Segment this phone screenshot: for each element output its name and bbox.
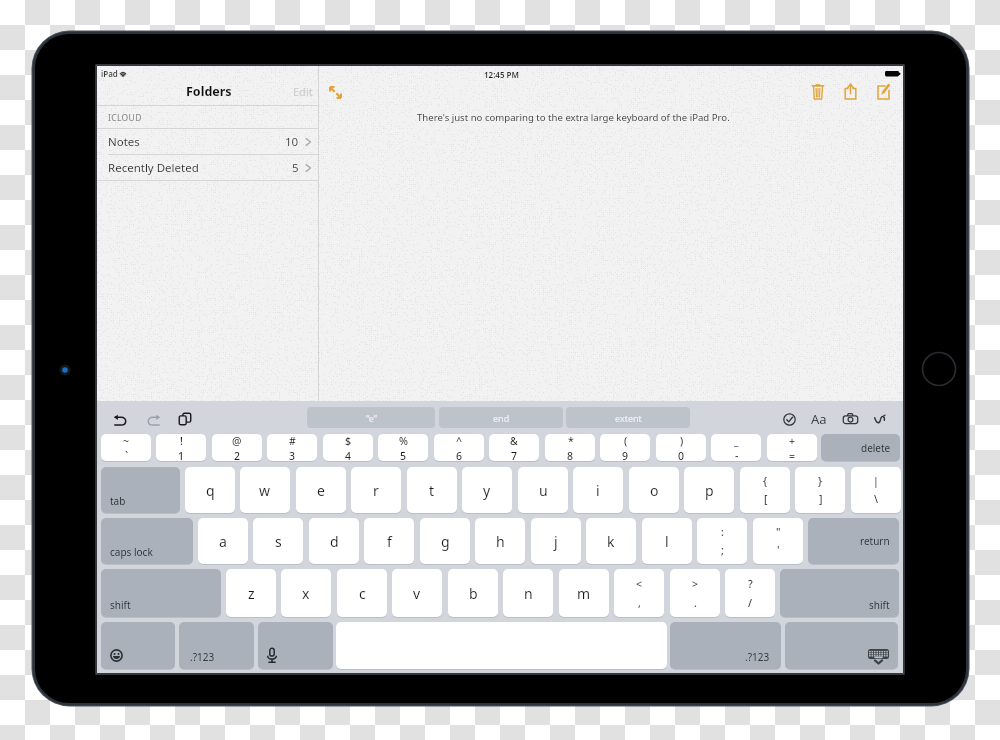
button[interactable]: Paste [179,413,191,425]
button[interactable]: Notes [97,128,318,155]
button[interactable]: y [462,467,512,513]
button[interactable]: x [281,569,331,617]
staticText: $ [345,434,352,448]
button[interactable]: z [226,569,276,617]
button[interactable]: ( [600,434,650,461]
staticText: p [705,481,714,500]
staticText: 5 [292,160,299,176]
button[interactable]: % [378,434,428,461]
button[interactable]: : [697,518,747,564]
button[interactable]: Share [844,83,857,100]
staticText: % [399,434,408,448]
button[interactable]: n [503,569,553,617]
button[interactable]: & [489,434,539,461]
button[interactable]: u [518,467,568,513]
staticText: s [275,532,282,551]
button[interactable]: " [753,518,803,564]
button[interactable]: + [767,434,817,461]
staticText: _ [734,434,739,448]
button[interactable]: * [545,434,595,461]
button[interactable]: Emoji [101,622,175,669]
button[interactable]: $ [323,434,373,461]
button[interactable]: p [684,467,734,513]
button[interactable]: Hide keyboard [785,622,898,669]
staticText: shift [869,598,890,612]
button[interactable]: > [670,569,720,617]
button[interactable]: Undo [114,414,127,426]
staticText: * [568,434,574,448]
button[interactable]: t [407,467,457,513]
button[interactable]: Expand note [329,86,342,99]
staticText: 4 [345,449,352,461]
button[interactable]: Edit [287,81,318,102]
button[interactable]: j [531,518,581,564]
staticText: 6 [456,449,463,461]
button[interactable]: Delete [812,83,824,100]
button[interactable]: c [337,569,387,617]
button[interactable]: Redo [147,414,160,426]
staticText: Notes [108,134,140,150]
button[interactable]: New note [877,83,890,100]
button[interactable]: f [364,518,414,564]
staticText: # [289,434,296,448]
button[interactable]: < [614,569,664,617]
staticText: a [219,532,227,551]
button[interactable]: shift [101,569,221,617]
button[interactable]: ! [156,434,206,461]
button[interactable]: @ [212,434,262,461]
button[interactable]: e [296,467,346,513]
button[interactable]: Text format [808,410,830,428]
button[interactable]: “e” [307,407,435,428]
button[interactable]: b [448,569,498,617]
button[interactable]: ^ [434,434,484,461]
button[interactable]: ? [725,569,775,617]
staticText: u [539,481,548,500]
button[interactable]: | [851,467,901,513]
button[interactable]: delete [821,434,900,461]
button[interactable]: _ [711,434,761,461]
staticText: “e” [366,412,377,424]
staticText: extent [615,412,642,424]
button[interactable]: } [795,467,845,513]
button[interactable]: s [253,518,303,564]
button[interactable]: o [629,467,679,513]
staticText: { [763,474,768,488]
button[interactable]: k [586,518,636,564]
button[interactable]: { [740,467,790,513]
button[interactable]: end [439,407,563,428]
button[interactable]: h [475,518,525,564]
button[interactable]: ~ [101,434,151,461]
staticText: ( [624,434,628,448]
staticText: d [330,532,339,551]
staticText: - [735,449,739,461]
button[interactable]: Dictation [258,622,333,669]
button[interactable]: w [240,467,290,513]
button[interactable]: r [351,467,401,513]
button[interactable]: a [198,518,248,564]
button[interactable]: tab [101,467,180,513]
staticText: There's just no comparing to the extra l… [417,111,730,124]
button[interactable]: .?123 [179,622,254,669]
button[interactable]: g [420,518,470,564]
button[interactable]: m [559,569,609,617]
button[interactable]: shift [780,569,899,617]
button[interactable]: caps lock [101,518,193,564]
button[interactable]: Checklist [783,413,796,426]
button[interactable]: # [267,434,317,461]
button[interactable]: Recently Deleted [97,154,318,181]
button[interactable]: l [642,518,692,564]
staticText: 1 [178,449,185,461]
button[interactable]: extent [566,407,690,428]
button[interactable]: v [392,569,442,617]
staticText: & [510,434,518,448]
button[interactable]: Camera [843,413,858,424]
button[interactable]: d [309,518,359,564]
button[interactable]: .?123 [670,622,781,669]
button[interactable]: q [185,467,235,513]
staticText: .?123 [745,650,770,664]
button[interactable]: Markup [874,414,886,425]
button[interactable]: return [808,518,899,564]
button[interactable]: ) [656,434,706,461]
button[interactable]: i [573,467,623,513]
